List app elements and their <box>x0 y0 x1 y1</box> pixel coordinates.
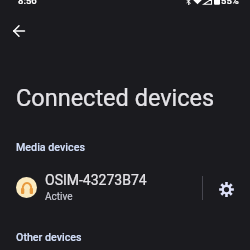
button[interactable]: OSIM-43273B74 <box>0 168 203 206</box>
staticText: OSIM-43273B74 <box>45 172 147 188</box>
button[interactable]: Back <box>7 19 31 43</box>
staticText: 8:56 <box>18 0 37 6</box>
staticText: 55% <box>221 0 239 6</box>
staticText: Other devices <box>16 231 82 244</box>
staticText: Connected devices <box>16 84 215 112</box>
button[interactable]: Device settings <box>204 168 250 206</box>
staticText: Active <box>45 191 73 203</box>
staticText: Media devices <box>16 141 85 154</box>
